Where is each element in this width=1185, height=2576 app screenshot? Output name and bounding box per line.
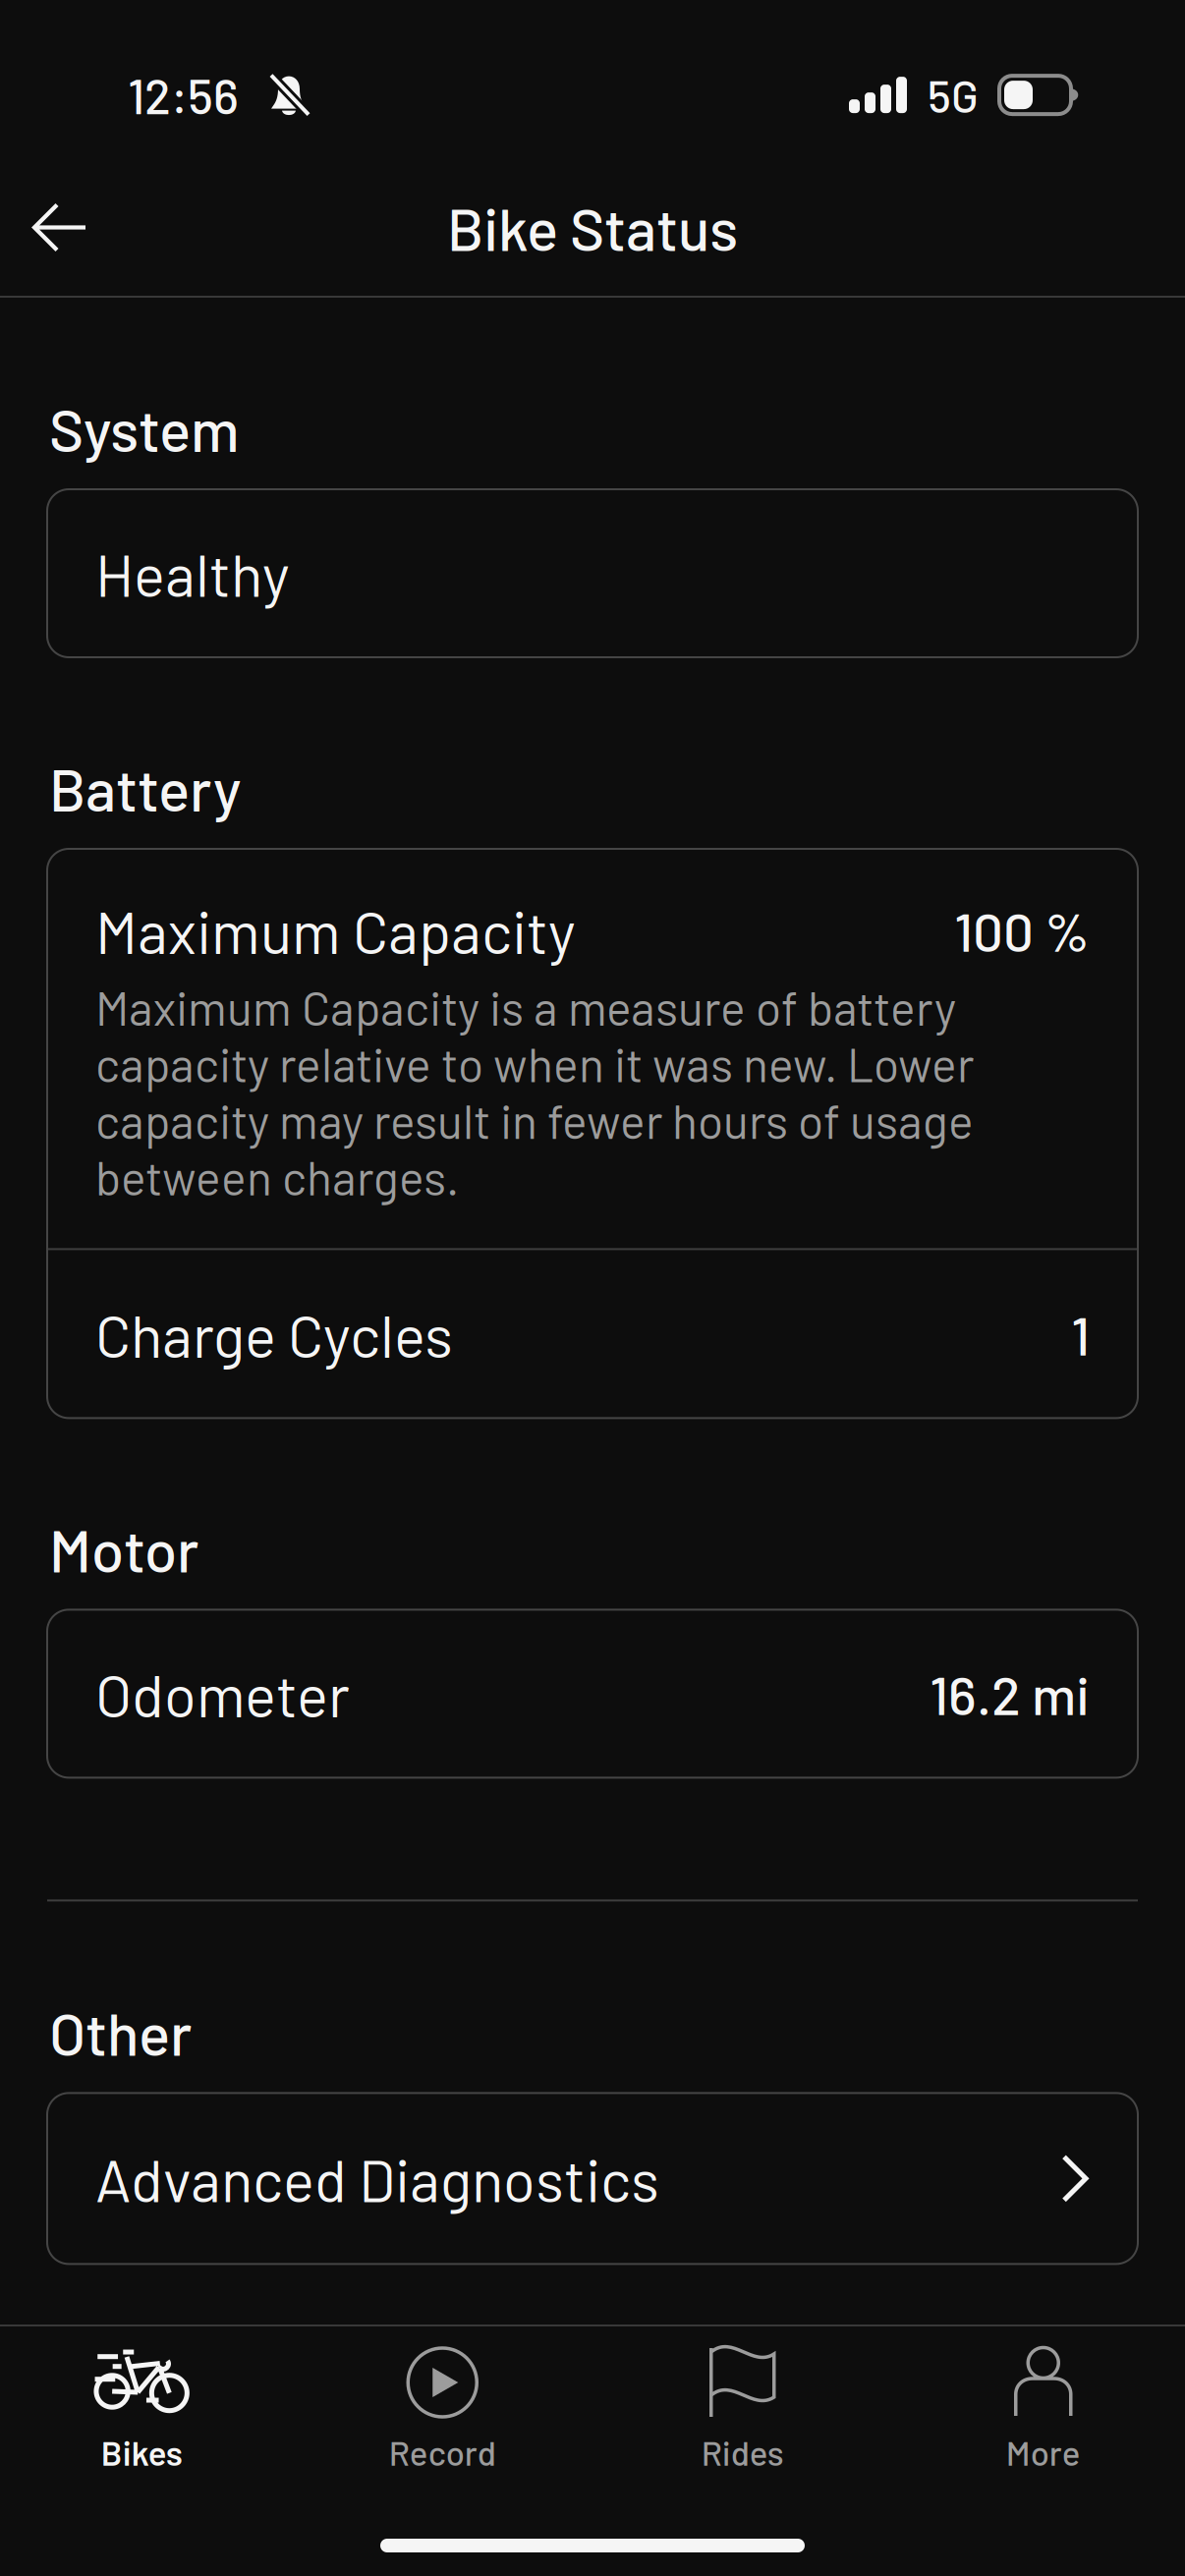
staticText: 12:56 (128, 66, 239, 124)
staticText: System (49, 393, 240, 464)
staticText: Maximum Capacity is a measure of battery… (95, 979, 974, 1205)
staticText: Maximum Capacity (95, 895, 576, 966)
staticText: 5G (928, 68, 979, 122)
button[interactable]: Rides (596, 2326, 889, 2482)
staticText: Record (389, 2432, 496, 2472)
button[interactable]: Bikes (0, 2326, 283, 2482)
staticText: Motor (49, 1513, 198, 1584)
button[interactable]: More (902, 2326, 1185, 2482)
staticText: Battery (49, 753, 242, 823)
staticText: Healthy (95, 538, 290, 609)
staticText: Advanced Diagnostics (95, 2143, 659, 2214)
staticText: 16.2 mi (930, 1661, 1090, 1726)
staticText: Bikes (101, 2432, 183, 2472)
button[interactable]: Back (0, 181, 111, 274)
staticText: 1 (1071, 1302, 1090, 1366)
staticText: More (1006, 2432, 1081, 2472)
staticText: 100 % (954, 898, 1090, 963)
staticText: Charge Cycles (95, 1299, 453, 1369)
staticText: Odometer (95, 1658, 350, 1729)
button[interactable]: Advanced Diagnostics (0, 2093, 1185, 2264)
staticText: Other (49, 1997, 192, 2067)
staticText: Rides (701, 2432, 784, 2472)
staticText: Bike Status (447, 192, 738, 263)
button[interactable]: Record (296, 2326, 589, 2482)
